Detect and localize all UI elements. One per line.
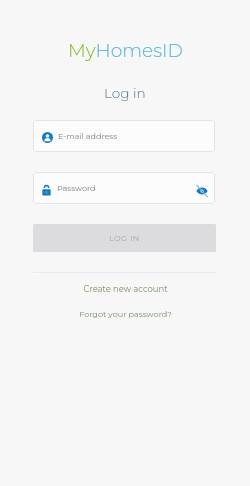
button[interactable]: LOG IN [33, 224, 216, 252]
button[interactable]: Password [33, 172, 215, 204]
button[interactable]: Forgot your password? [0, 306, 250, 322]
staticText: MyHomesID [68, 39, 183, 62]
staticText: E-mail address [58, 131, 118, 141]
button[interactable]: E-mail address [33, 120, 215, 152]
staticText: Forgot your password? [79, 309, 172, 319]
staticText: Log in [104, 85, 146, 102]
staticText: LOG IN [109, 233, 140, 243]
staticText: Create new account [83, 284, 168, 294]
button[interactable]: Show password [193, 182, 211, 200]
staticText: Password [57, 183, 96, 193]
button[interactable]: Create new account [0, 281, 250, 297]
